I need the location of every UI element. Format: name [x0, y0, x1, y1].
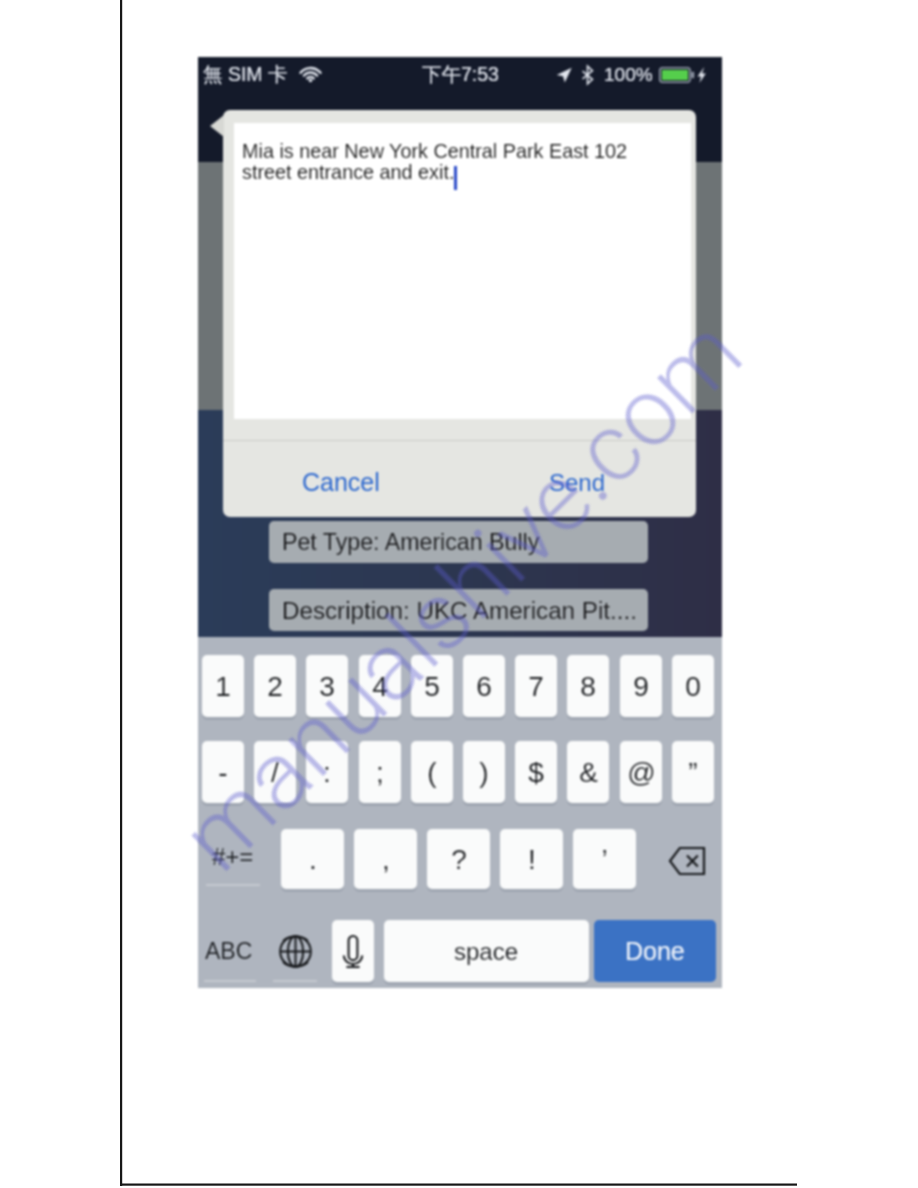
staticText: (	[427, 757, 437, 788]
staticText: /	[271, 757, 279, 788]
button[interactable]: 8	[567, 655, 609, 717]
button[interactable]: 0	[672, 655, 714, 717]
staticText: )	[479, 757, 489, 788]
button[interactable]: -	[202, 741, 244, 803]
button[interactable]: @	[620, 741, 662, 803]
staticText: space	[454, 938, 519, 965]
button[interactable]: Cancel	[223, 451, 459, 513]
staticText: Done	[625, 937, 685, 965]
staticText: Send	[549, 469, 606, 496]
staticText: @	[627, 757, 656, 788]
staticText: 9	[633, 671, 649, 702]
staticText: ABC	[205, 938, 253, 964]
button[interactable]: $	[515, 741, 557, 803]
button[interactable]: 9	[620, 655, 662, 717]
staticText: manualshive.com	[160, 297, 763, 892]
button[interactable]: ,	[354, 829, 417, 889]
staticText: Cancel	[302, 468, 380, 496]
staticText: 8	[580, 671, 596, 702]
button[interactable]: 7	[515, 655, 557, 717]
button[interactable]: )	[463, 741, 505, 803]
staticText: ’	[601, 844, 608, 875]
button[interactable]: 2	[254, 655, 296, 717]
button[interactable]: ABC	[200, 920, 258, 982]
staticText: .	[309, 844, 317, 875]
button[interactable]: Dictate	[332, 920, 374, 982]
button[interactable]: Description: UKC American Pit....	[269, 589, 648, 631]
staticText: -	[218, 757, 228, 788]
button[interactable]: (	[411, 741, 453, 803]
staticText: 1	[215, 671, 231, 702]
staticText: ?	[451, 844, 467, 875]
button[interactable]: space	[384, 920, 589, 982]
button[interactable]: #+=	[202, 826, 264, 886]
staticText: 3	[319, 671, 335, 702]
button[interactable]: 5	[411, 655, 453, 717]
staticText: $	[528, 757, 544, 788]
staticText: Mia is near New York Central Park East 1…	[242, 140, 628, 183]
staticText: :	[323, 757, 331, 788]
staticText: 4	[372, 671, 388, 702]
button[interactable]: ”	[672, 741, 714, 803]
button[interactable]: Send	[459, 451, 696, 513]
staticText: 下午7:53	[422, 62, 499, 87]
staticText: 7	[528, 671, 544, 702]
button[interactable]: :	[306, 741, 348, 803]
button[interactable]: &	[567, 741, 609, 803]
staticText: 100%	[604, 64, 653, 85]
button[interactable]: !	[500, 829, 563, 889]
staticText: 0	[685, 671, 701, 702]
staticText: ,	[382, 844, 390, 875]
button[interactable]: Change keyboard	[269, 920, 321, 982]
button[interactable]: 4	[359, 655, 401, 717]
button[interactable]: ;	[359, 741, 401, 803]
staticText: Pet Type: American Bully	[282, 529, 540, 555]
staticText: 5	[424, 671, 440, 702]
staticText: !	[528, 844, 536, 875]
staticText: Description: UKC American Pit....	[282, 597, 637, 624]
staticText: ;	[376, 757, 384, 788]
button[interactable]: Backspace	[654, 831, 720, 891]
button[interactable]: 1	[202, 655, 244, 717]
button[interactable]: Done	[594, 920, 716, 982]
button[interactable]: 3	[306, 655, 348, 717]
button[interactable]: /	[254, 741, 296, 803]
button[interactable]: .	[281, 829, 344, 889]
staticText: ”	[688, 757, 698, 788]
button[interactable]: 6	[463, 655, 505, 717]
staticText: #+=	[212, 843, 254, 870]
button[interactable]: Pet Type: American Bully	[269, 521, 648, 563]
staticText: &	[579, 757, 598, 788]
staticText: 6	[476, 671, 492, 702]
staticText: 無 SIM 卡	[203, 62, 288, 87]
button[interactable]: ?	[427, 829, 490, 889]
staticText: 2	[267, 671, 283, 702]
button[interactable]: ’	[573, 829, 636, 889]
